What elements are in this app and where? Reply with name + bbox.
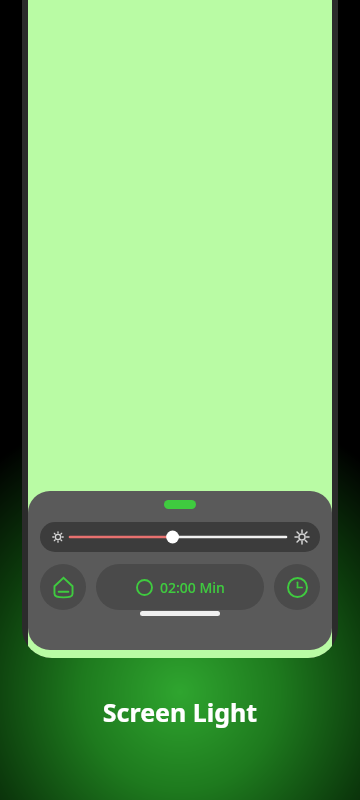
button[interactable] [164,500,196,509]
staticText: 02:00 Min [160,578,225,597]
button[interactable]: 02:00 Min [96,564,264,610]
staticText: Screen Light [0,695,360,729]
button[interactable]: Lamp mode [40,564,86,610]
button[interactable]: Brightness [40,522,320,552]
button[interactable]: Set timer [274,564,320,610]
